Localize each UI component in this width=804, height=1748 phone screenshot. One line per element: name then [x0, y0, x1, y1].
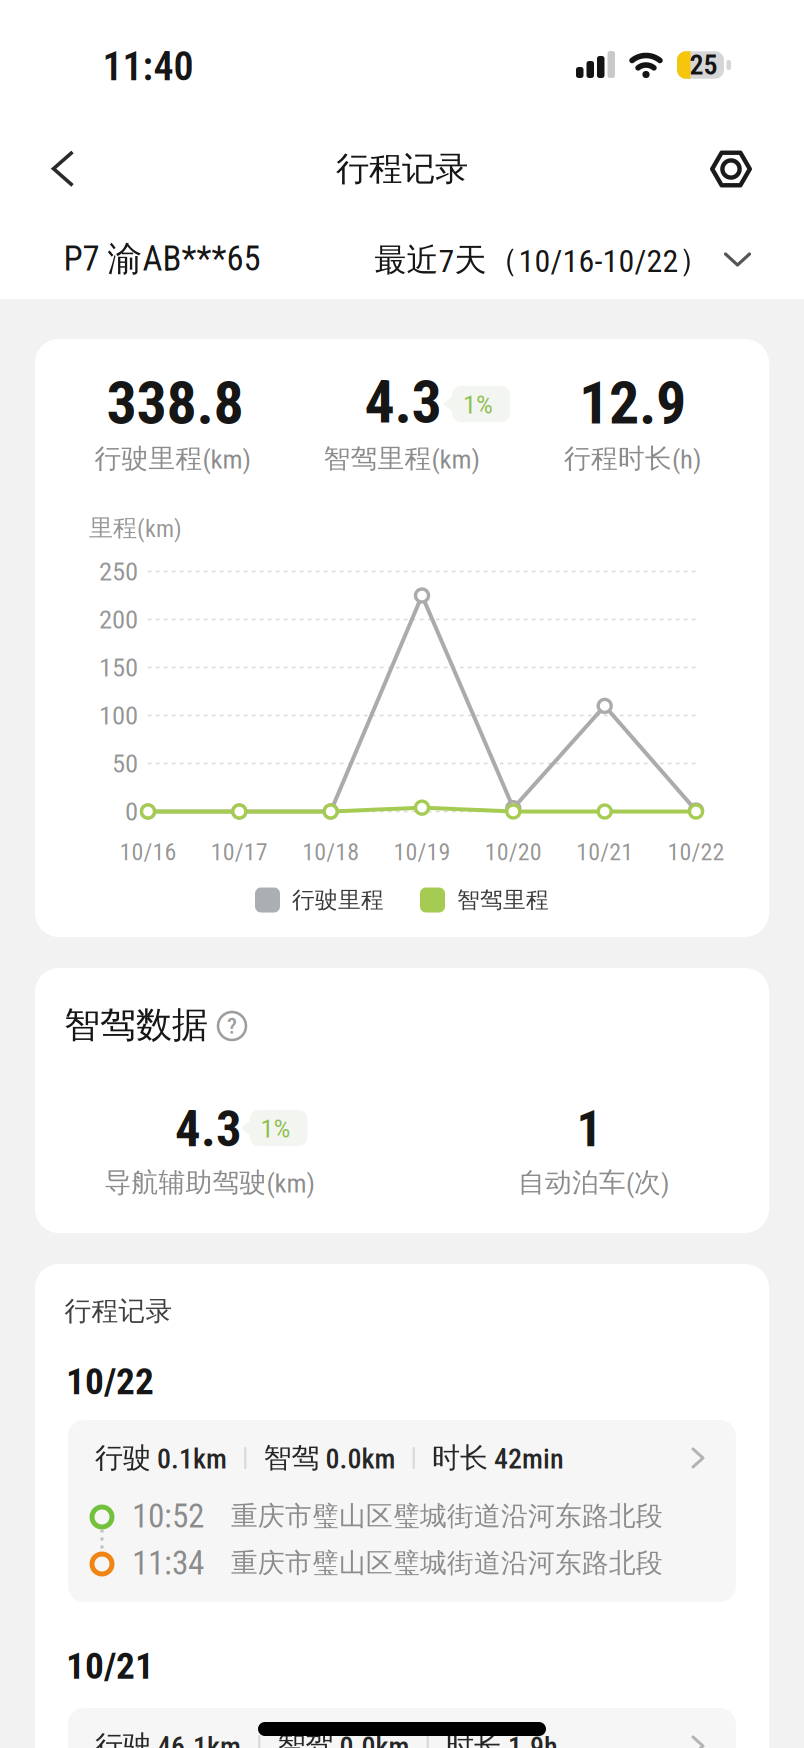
staticText: 4.3 — [175, 1099, 242, 1159]
staticText: 重庆市璧山区璧城街道沿河东路北段 — [231, 1499, 663, 1533]
staticText: 智驾里程(km) — [323, 442, 480, 475]
staticText: 最近7天（10/16-10/22） — [374, 240, 710, 280]
button[interactable]: P7 渝AB***65 — [63, 237, 260, 281]
button[interactable]: Help — [218, 1012, 246, 1040]
staticText: 1% — [260, 1113, 290, 1144]
staticText: 100 — [99, 700, 138, 731]
staticText: 里程(km) — [89, 513, 182, 543]
staticText: 10/19 — [393, 838, 450, 866]
staticText: 重庆市璧山区璧城街道沿河东路北段 — [231, 1546, 663, 1580]
staticText: 25 — [689, 49, 717, 81]
staticText: 10/21 — [576, 838, 633, 866]
staticText: 智驾里程 — [457, 886, 549, 914]
staticText: 智驾 0.0km — [277, 1728, 409, 1748]
staticText: 行驶里程(km) — [94, 442, 251, 475]
staticText: 1% — [463, 389, 493, 420]
staticText: 行程记录 — [336, 148, 468, 190]
staticText: 0 — [125, 796, 138, 827]
staticText: 10/17 — [211, 838, 268, 866]
staticText: 10/18 — [302, 838, 359, 866]
button[interactable]: 最近7天（10/16-10/22） — [374, 240, 751, 280]
staticText: 时长 42min — [432, 1440, 564, 1476]
staticText: 时长 1.9h — [446, 1728, 558, 1748]
staticText: 行驶里程 — [292, 886, 384, 914]
staticText: 150 — [99, 652, 138, 683]
staticText: 10/16 — [119, 838, 176, 866]
staticText: 12.9 — [579, 368, 686, 438]
staticText: 10/21 — [66, 1644, 154, 1688]
staticText: 4.3 — [364, 367, 441, 437]
button[interactable]: 行驶 46.1km — [68, 1708, 736, 1748]
staticText: 行驶 46.1km — [95, 1728, 241, 1748]
button[interactable]: Settings — [708, 146, 754, 192]
staticText: 智驾 0.0km — [263, 1440, 395, 1476]
staticText: 200 — [99, 604, 138, 635]
staticText: 智驾数据 — [64, 1002, 208, 1048]
staticText: 250 — [99, 556, 138, 587]
staticText: 10/20 — [485, 838, 542, 866]
staticText: 行程时长(h) — [564, 442, 702, 475]
staticText: 338.8 — [106, 368, 243, 438]
button[interactable]: Back — [40, 146, 86, 192]
staticText: 50 — [112, 748, 138, 779]
staticText: 自动泊车(次) — [518, 1166, 670, 1199]
staticText: ? — [227, 1013, 237, 1039]
staticText: 11:34 — [132, 1543, 204, 1583]
staticText: P7 渝AB***65 — [63, 237, 260, 281]
button[interactable]: 行驶 0.1km — [68, 1420, 736, 1602]
staticText: 行程记录 — [64, 1294, 172, 1328]
staticText: 导航辅助驾驶(km) — [104, 1166, 315, 1199]
staticText: 行驶 0.1km — [95, 1440, 227, 1476]
staticText: 10/22 — [667, 838, 724, 866]
staticText: 1 — [576, 1099, 602, 1159]
staticText: 10/22 — [66, 1360, 154, 1403]
staticText: 11:40 — [102, 43, 193, 90]
staticText: 10:52 — [132, 1496, 204, 1536]
